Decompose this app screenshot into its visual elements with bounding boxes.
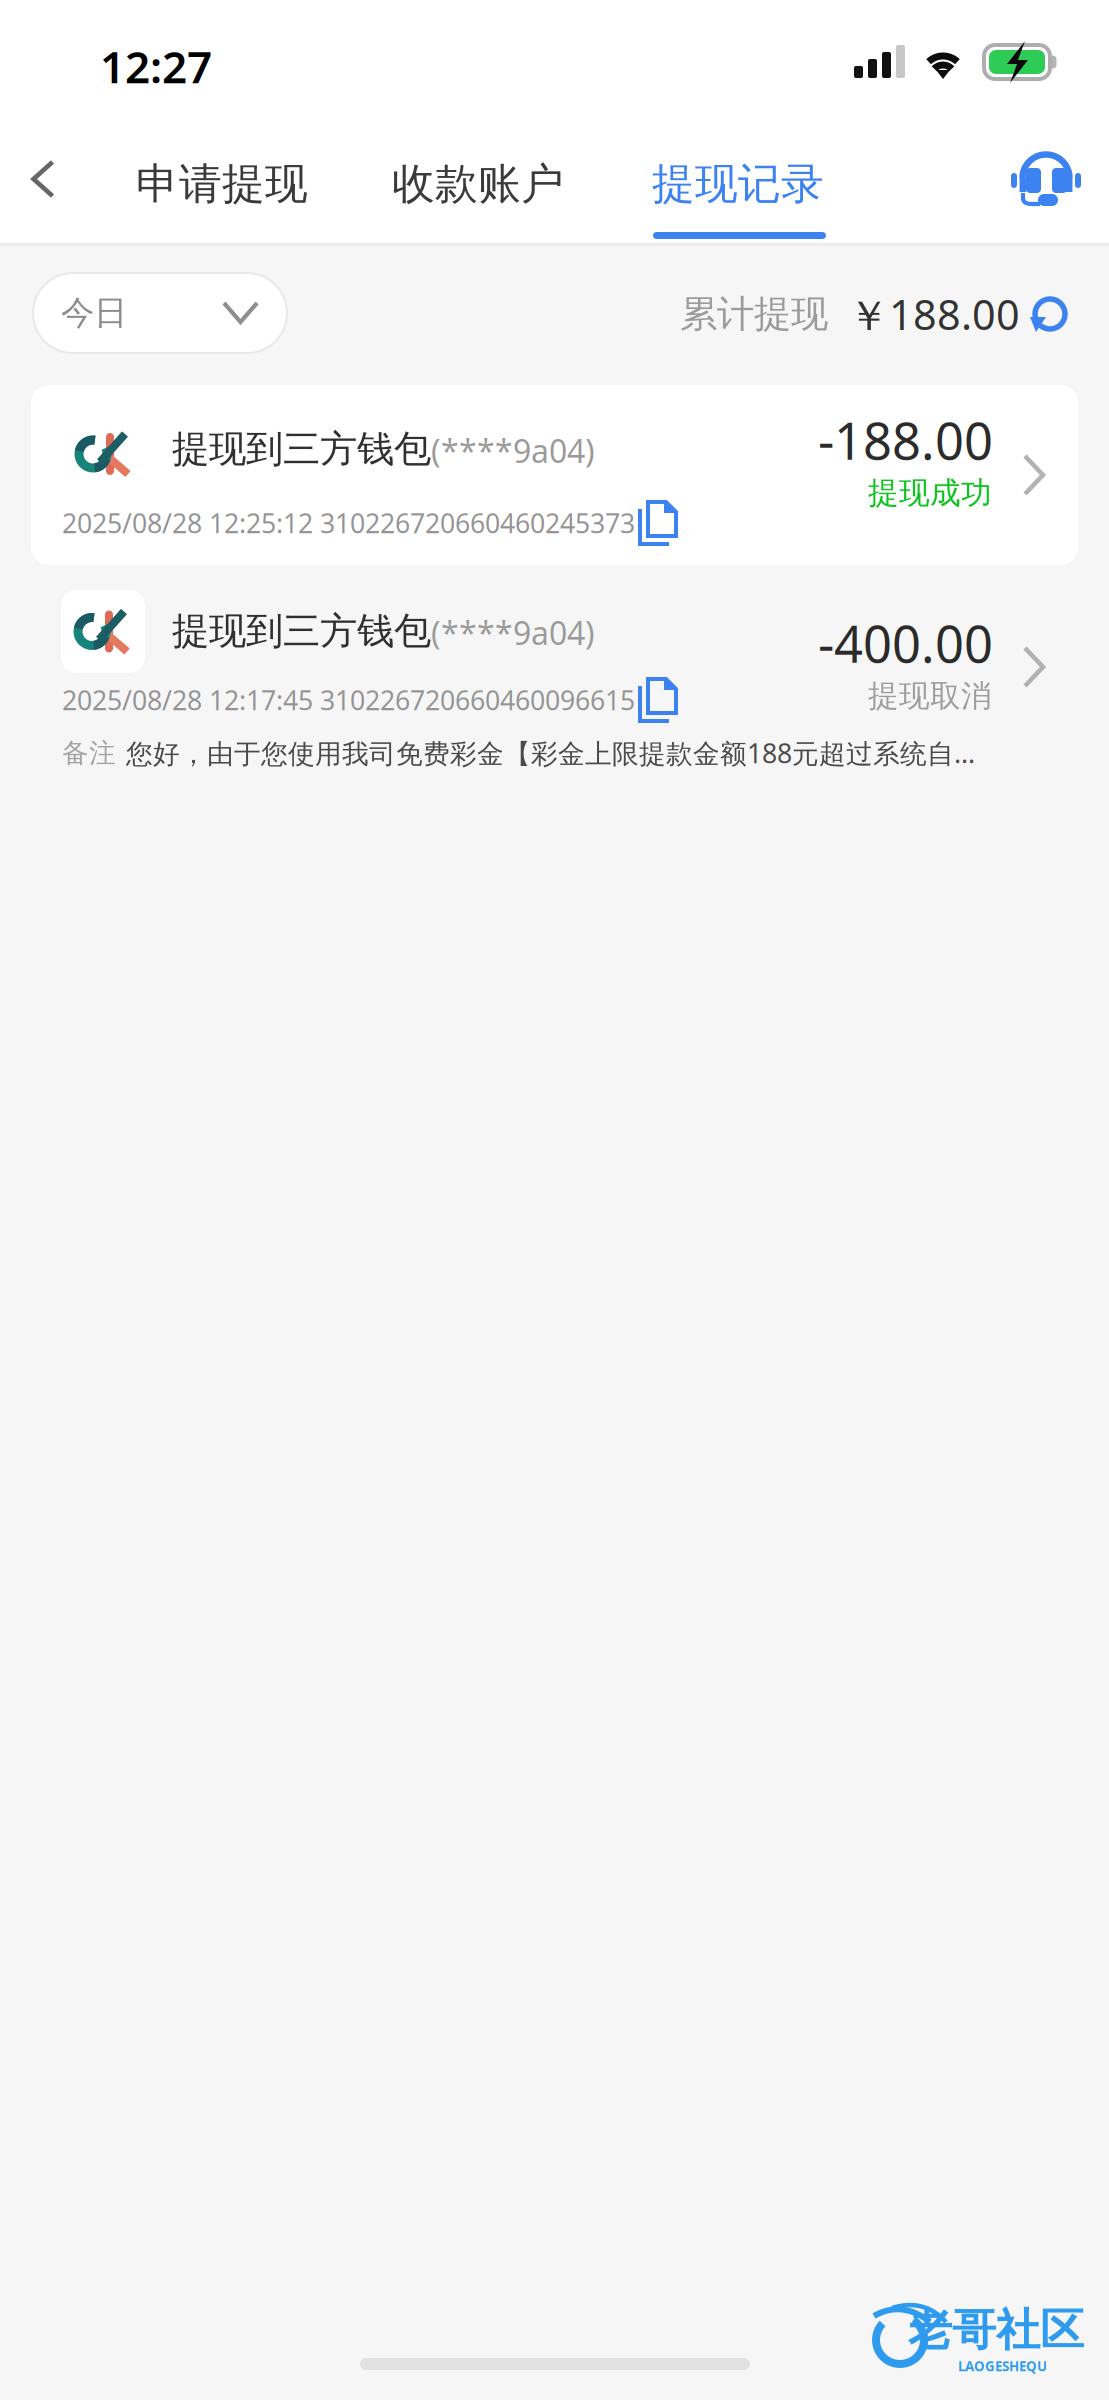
button[interactable]: 提现记录	[638, 150, 838, 218]
staticText: -188.00	[818, 406, 993, 474]
staticText: -400.00	[818, 609, 993, 677]
staticText: 您好，由于您使用我司免费彩金【彩金上限提款金额188元超过系统自...	[126, 735, 975, 771]
button[interactable]: Copy order number	[638, 677, 678, 723]
button[interactable]: Back	[10, 145, 76, 213]
button[interactable]: 收款账户	[378, 150, 578, 218]
button[interactable]: Customer service	[1010, 145, 1100, 219]
button[interactable]: 申请提现	[122, 150, 322, 218]
staticText: 提现成功	[868, 474, 992, 512]
button[interactable]: 今日	[33, 273, 287, 353]
button[interactable]: Refresh	[1029, 295, 1071, 335]
staticText: (****9a04)	[431, 611, 595, 654]
staticText: 提现到三方钱包	[172, 608, 431, 654]
staticText: ￥188.00	[848, 286, 1020, 341]
staticText: 老哥社区	[908, 2303, 1084, 2357]
staticText: 提现取消	[868, 677, 992, 715]
staticText: (****9a04)	[431, 429, 595, 472]
staticText: 备注	[62, 737, 116, 769]
staticText: 提现到三方钱包	[172, 426, 431, 472]
staticText: 12:27	[100, 37, 212, 95]
staticText: 今日	[61, 292, 127, 333]
button[interactable]: Copy order number	[638, 500, 678, 546]
staticText: 2025/08/28 12:25:12 31022672066046024537…	[62, 505, 635, 541]
staticText: 累计提现	[680, 291, 828, 337]
staticText: 2025/08/28 12:17:45 31022672066046009661…	[62, 682, 635, 718]
staticText: 提现记录	[652, 158, 824, 210]
staticText: 申请提现	[136, 158, 308, 210]
staticText: 收款账户	[392, 158, 564, 210]
staticText: LAOGESHEQU	[958, 2357, 1047, 2375]
